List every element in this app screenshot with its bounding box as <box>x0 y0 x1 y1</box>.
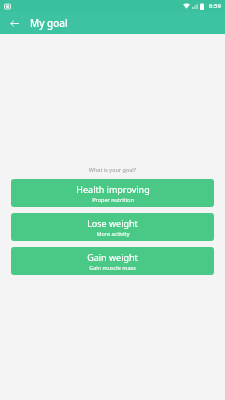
staticText: Proper nutrition <box>92 196 134 203</box>
button[interactable]: Back <box>7 16 22 31</box>
staticText: Lose weight <box>87 217 138 229</box>
staticText: Health improving <box>76 183 150 195</box>
staticText: Gain muscle mass <box>89 264 136 271</box>
staticText: 6:59 <box>209 2 221 10</box>
button[interactable]: Gain weight <box>11 247 214 275</box>
staticText: What is your goal? <box>0 166 225 173</box>
button[interactable]: Lose weight <box>11 213 214 241</box>
staticText: More activity <box>96 230 130 237</box>
button[interactable]: Health improving <box>11 179 214 207</box>
staticText: Gain weight <box>87 251 138 263</box>
staticText: My goal <box>30 16 68 30</box>
